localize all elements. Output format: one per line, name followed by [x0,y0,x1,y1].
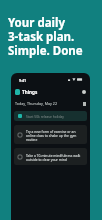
button[interactable]: Take a 10-minute mindfulness walk [14,148,87,165]
button[interactable]: Start 50k release holiday [14,111,87,121]
staticText: Try a new form of exercise or an [26,129,76,133]
staticText: Your daily 3-task plan. Simple. Done [8,15,83,58]
staticText: Start 50k release holiday [26,114,64,118]
button[interactable]: Try a new form of exercise or an [14,125,87,144]
button[interactable]: Things app icon [15,89,20,95]
staticText: online class to shake up the gym [26,133,77,137]
staticText: routine [26,137,38,141]
staticText: 9:41 [19,78,27,83]
staticText: Things [22,89,38,95]
staticText: Today, Thursday, May 22 [15,101,57,106]
staticText: Take a 10-minute mindfulness walk [26,153,81,157]
staticText: outside to clear your mind [26,157,67,161]
button[interactable]: Profile [82,90,86,94]
